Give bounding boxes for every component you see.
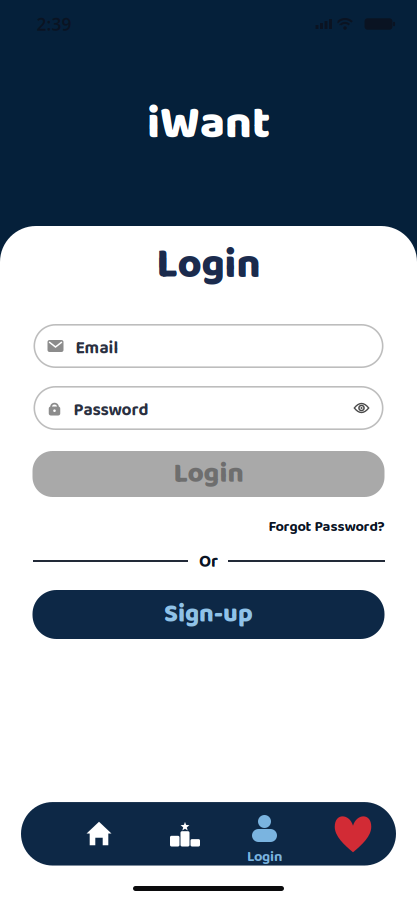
staticText: Or [199,548,218,576]
staticText: Password [73,397,148,424]
button[interactable]: Login [242,806,286,864]
button[interactable]: Favorites [335,816,371,852]
button[interactable]: Home [86,822,111,845]
staticText: 2:39 [36,12,71,35]
button[interactable]: Forgot Password? [32,515,384,539]
button[interactable]: Login [32,451,384,497]
staticText: Login [173,452,243,496]
staticText: Email [75,335,118,362]
staticText: Login [247,845,282,869]
staticText: Login [156,232,260,298]
button[interactable]: Show password [353,402,369,413]
button[interactable]: Sign-up [32,590,384,639]
button[interactable]: Leaderboard [169,821,199,846]
staticText: iWant [147,87,270,161]
staticText: Forgot Password? [268,515,384,539]
staticText: Sign-up [164,594,253,635]
